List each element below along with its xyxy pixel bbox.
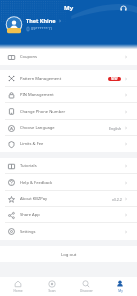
staticText: Help & Feedback bbox=[20, 180, 53, 186]
staticText: Home bbox=[13, 289, 23, 293]
button[interactable]: Log out bbox=[0, 246, 137, 262]
staticText: Limits & Fee bbox=[20, 141, 44, 147]
staticText: NEW bbox=[111, 77, 118, 81]
button[interactable]: PIN Management bbox=[0, 87, 137, 103]
staticText: Share App bbox=[20, 212, 40, 218]
button[interactable]: Choose Language bbox=[0, 120, 137, 136]
staticText: Scan bbox=[48, 289, 56, 293]
button[interactable]: My bbox=[103, 277, 137, 296]
staticText: Coupons bbox=[20, 54, 38, 60]
staticText: My bbox=[64, 4, 74, 12]
button[interactable]: Limits & Fee bbox=[0, 136, 137, 152]
button[interactable]: Tutorials bbox=[0, 158, 137, 174]
staticText: Thet Khine bbox=[26, 17, 56, 24]
button[interactable]: Share App bbox=[0, 207, 137, 223]
button[interactable]: Help & Feedback bbox=[0, 174, 137, 191]
staticText: About KBZPay bbox=[20, 196, 48, 202]
button[interactable]: Change Phone Number bbox=[0, 103, 137, 120]
staticText: PIN Management bbox=[20, 92, 54, 98]
staticText: My bbox=[118, 289, 123, 293]
button[interactable]: Thet Khine bbox=[5, 16, 132, 34]
staticText: English bbox=[109, 126, 122, 131]
button[interactable]: Settings bbox=[0, 223, 137, 240]
button[interactable]: Coupons bbox=[0, 49, 137, 65]
button[interactable]: Home bbox=[0, 277, 35, 296]
button[interactable]: Discover bbox=[69, 277, 103, 296]
staticText: Settings bbox=[20, 229, 36, 235]
button[interactable]: Scan bbox=[35, 277, 69, 296]
staticText: Tutorials bbox=[20, 163, 37, 169]
staticText: Choose Language bbox=[20, 125, 55, 131]
staticText: 09******11 bbox=[31, 26, 53, 31]
staticText: Change Phone Number bbox=[20, 109, 66, 115]
staticText: Discover bbox=[80, 289, 93, 293]
staticText: Log out bbox=[61, 251, 77, 257]
button[interactable]: About KBZPay bbox=[0, 191, 137, 207]
staticText: Pattern Management bbox=[20, 76, 62, 82]
button[interactable]: Pattern Management bbox=[0, 70, 137, 87]
staticText: v3.2.2 bbox=[112, 197, 122, 202]
button[interactable]: Customer support bbox=[117, 2, 129, 14]
